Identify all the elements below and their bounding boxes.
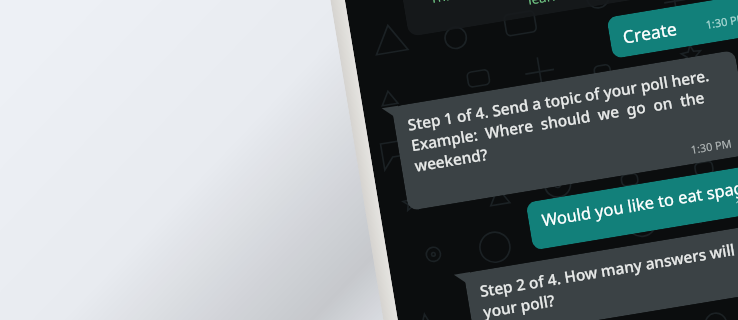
button[interactable]: Would you like to eat spagetti? bbox=[525, 158, 738, 250]
staticText: Step 1 of 4. Send a topic of your poll h… bbox=[406, 64, 718, 176]
staticText: Step 2 of 4. How many answers will be in… bbox=[478, 232, 738, 320]
staticText: Would you like to eat spagetti? bbox=[540, 170, 738, 231]
button[interactable]: This chat is with a business account. Ta… bbox=[400, 0, 724, 37]
staticText: Create bbox=[621, 16, 679, 49]
button[interactable]: Create bbox=[606, 0, 738, 59]
staticText: 1:32 PM bbox=[734, 190, 738, 212]
staticText: This chat is with a business account. Ta… bbox=[417, 0, 707, 28]
button[interactable]: Step 2 of 4. How many answers will be in… bbox=[464, 219, 738, 320]
staticText: 1:30 PM bbox=[689, 135, 733, 157]
staticText: 1:30 PM bbox=[704, 10, 738, 32]
button[interactable]: Step 1 of 4. Send a topic of your poll h… bbox=[391, 50, 738, 211]
